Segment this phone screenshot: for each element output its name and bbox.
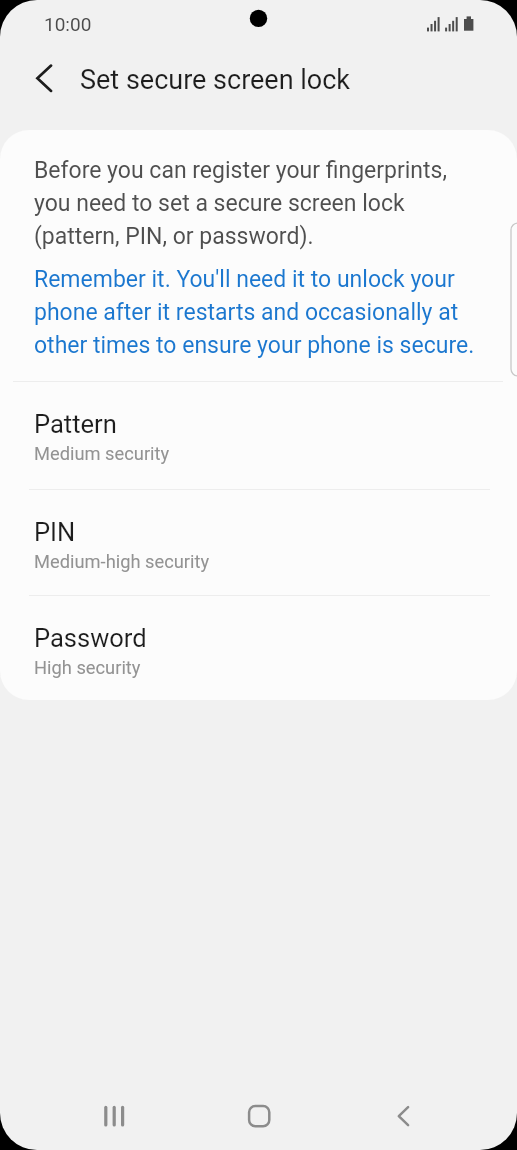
button[interactable]: Navigate up (22, 56, 66, 100)
staticText: Pattern (34, 409, 117, 439)
button[interactable]: Password (0, 595, 517, 700)
staticText: Set secure screen lock (80, 64, 351, 96)
staticText: 10:00 (44, 13, 92, 35)
button[interactable]: Home (223, 1082, 295, 1140)
button[interactable]: Recent apps (78, 1082, 150, 1140)
staticText: PIN (34, 517, 76, 547)
button[interactable]: PIN (0, 489, 517, 596)
staticText: Medium-high security (34, 551, 210, 572)
staticText: High security (34, 657, 141, 678)
staticText: Password (34, 623, 147, 653)
staticText: Before you can register your fingerprint… (34, 152, 484, 251)
staticText: Medium security (34, 443, 170, 464)
button[interactable]: Pattern (0, 381, 517, 488)
button[interactable]: Back (368, 1082, 440, 1140)
staticText: Remember it. You'll need it to unlock yo… (34, 261, 484, 360)
